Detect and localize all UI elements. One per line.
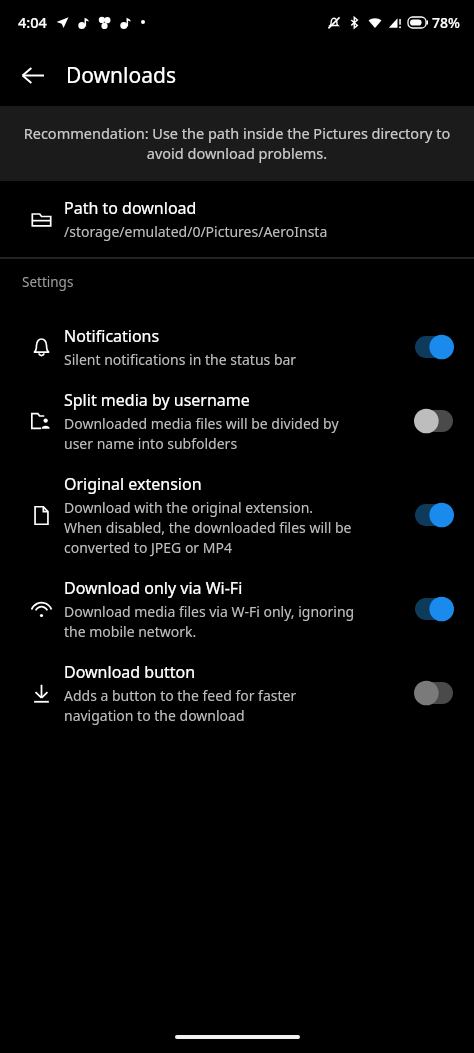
staticText: 78%	[432, 13, 460, 32]
staticText: Silent notifications in the status bar	[64, 350, 297, 369]
button[interactable]: Back	[8, 51, 56, 99]
staticText: /storage/emulated/0/Pictures/AeroInsta	[64, 222, 328, 241]
staticText: Notifications	[64, 325, 160, 347]
staticText: Split media by username	[64, 389, 250, 411]
button[interactable]: Download button	[0, 651, 474, 735]
staticText: Downloaded media files will be divided b…	[64, 414, 339, 453]
button[interactable]: Toggle on	[410, 592, 458, 626]
staticText: Settings	[22, 273, 74, 291]
button[interactable]: Toggle on	[410, 330, 458, 364]
staticText: Download only via Wi-Fi	[64, 577, 243, 599]
button[interactable]: Notifications	[0, 315, 474, 379]
staticText: Download with the original extension. Wh…	[64, 498, 352, 557]
button[interactable]: Toggle on	[410, 498, 458, 532]
staticText: Adds a button to the feed for faster nav…	[64, 686, 297, 725]
button[interactable]: Split media by username	[0, 379, 474, 463]
staticText: Path to download	[64, 197, 197, 219]
button[interactable]: Path to download	[0, 181, 474, 257]
staticText: Recommendation: Use the path inside the …	[22, 123, 452, 164]
staticText: Download media files via W-Fi only, igno…	[64, 602, 355, 641]
button[interactable]: Toggle off	[410, 676, 458, 710]
button[interactable]: Download only via Wi-Fi	[0, 567, 474, 651]
staticText: 4:04	[18, 12, 47, 32]
button[interactable]: Toggle off	[410, 404, 458, 438]
staticText: Downloads	[66, 61, 176, 90]
staticText: Original extension	[64, 473, 202, 495]
button[interactable]: Original extension	[0, 463, 474, 567]
staticText: Download button	[64, 661, 196, 683]
